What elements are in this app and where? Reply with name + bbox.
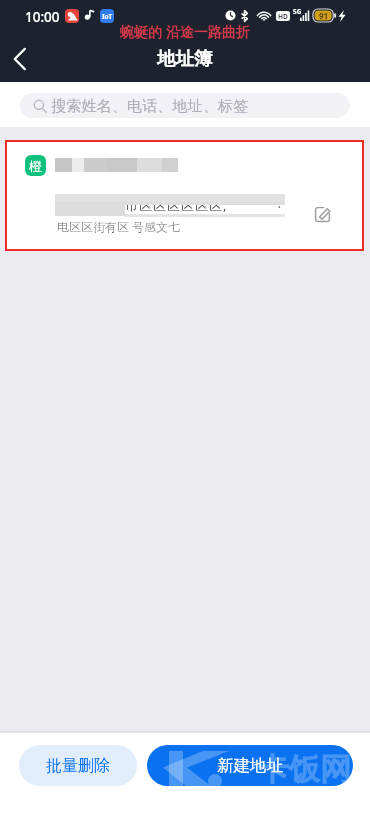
staticText: 地址簿 — [157, 47, 213, 70]
staticText: 5G — [293, 7, 302, 16]
staticText: 市区区区区区区, — [125, 196, 228, 214]
staticText: 新建地址 — [217, 755, 283, 776]
staticText: 卡饭网 — [258, 750, 351, 786]
staticText: ? — [277, 194, 283, 212]
staticText: 橙 — [29, 158, 42, 174]
staticText: HD — [278, 12, 288, 21]
staticText: 蜿蜒的 沿途一路曲折 — [120, 22, 250, 41]
staticText: 批量删除 — [46, 756, 110, 776]
staticText: 91 — [319, 10, 329, 21]
staticText: IoT — [102, 12, 113, 21]
staticText: 10:00 — [25, 8, 60, 26]
button[interactable]: 橙 — [7, 142, 362, 249]
staticText: 搜索姓名、电话、地址、标签 — [51, 96, 249, 115]
button[interactable]: 批量删除 — [19, 745, 137, 786]
button[interactable]: Back — [0, 39, 40, 79]
button[interactable]: Edit — [308, 200, 337, 229]
button[interactable]: 搜索姓名、电话、地址、标签 — [20, 93, 350, 118]
staticText: 电区区街有区 号感文七 — [57, 218, 181, 234]
button[interactable]: 卡饭网 — [147, 745, 353, 786]
